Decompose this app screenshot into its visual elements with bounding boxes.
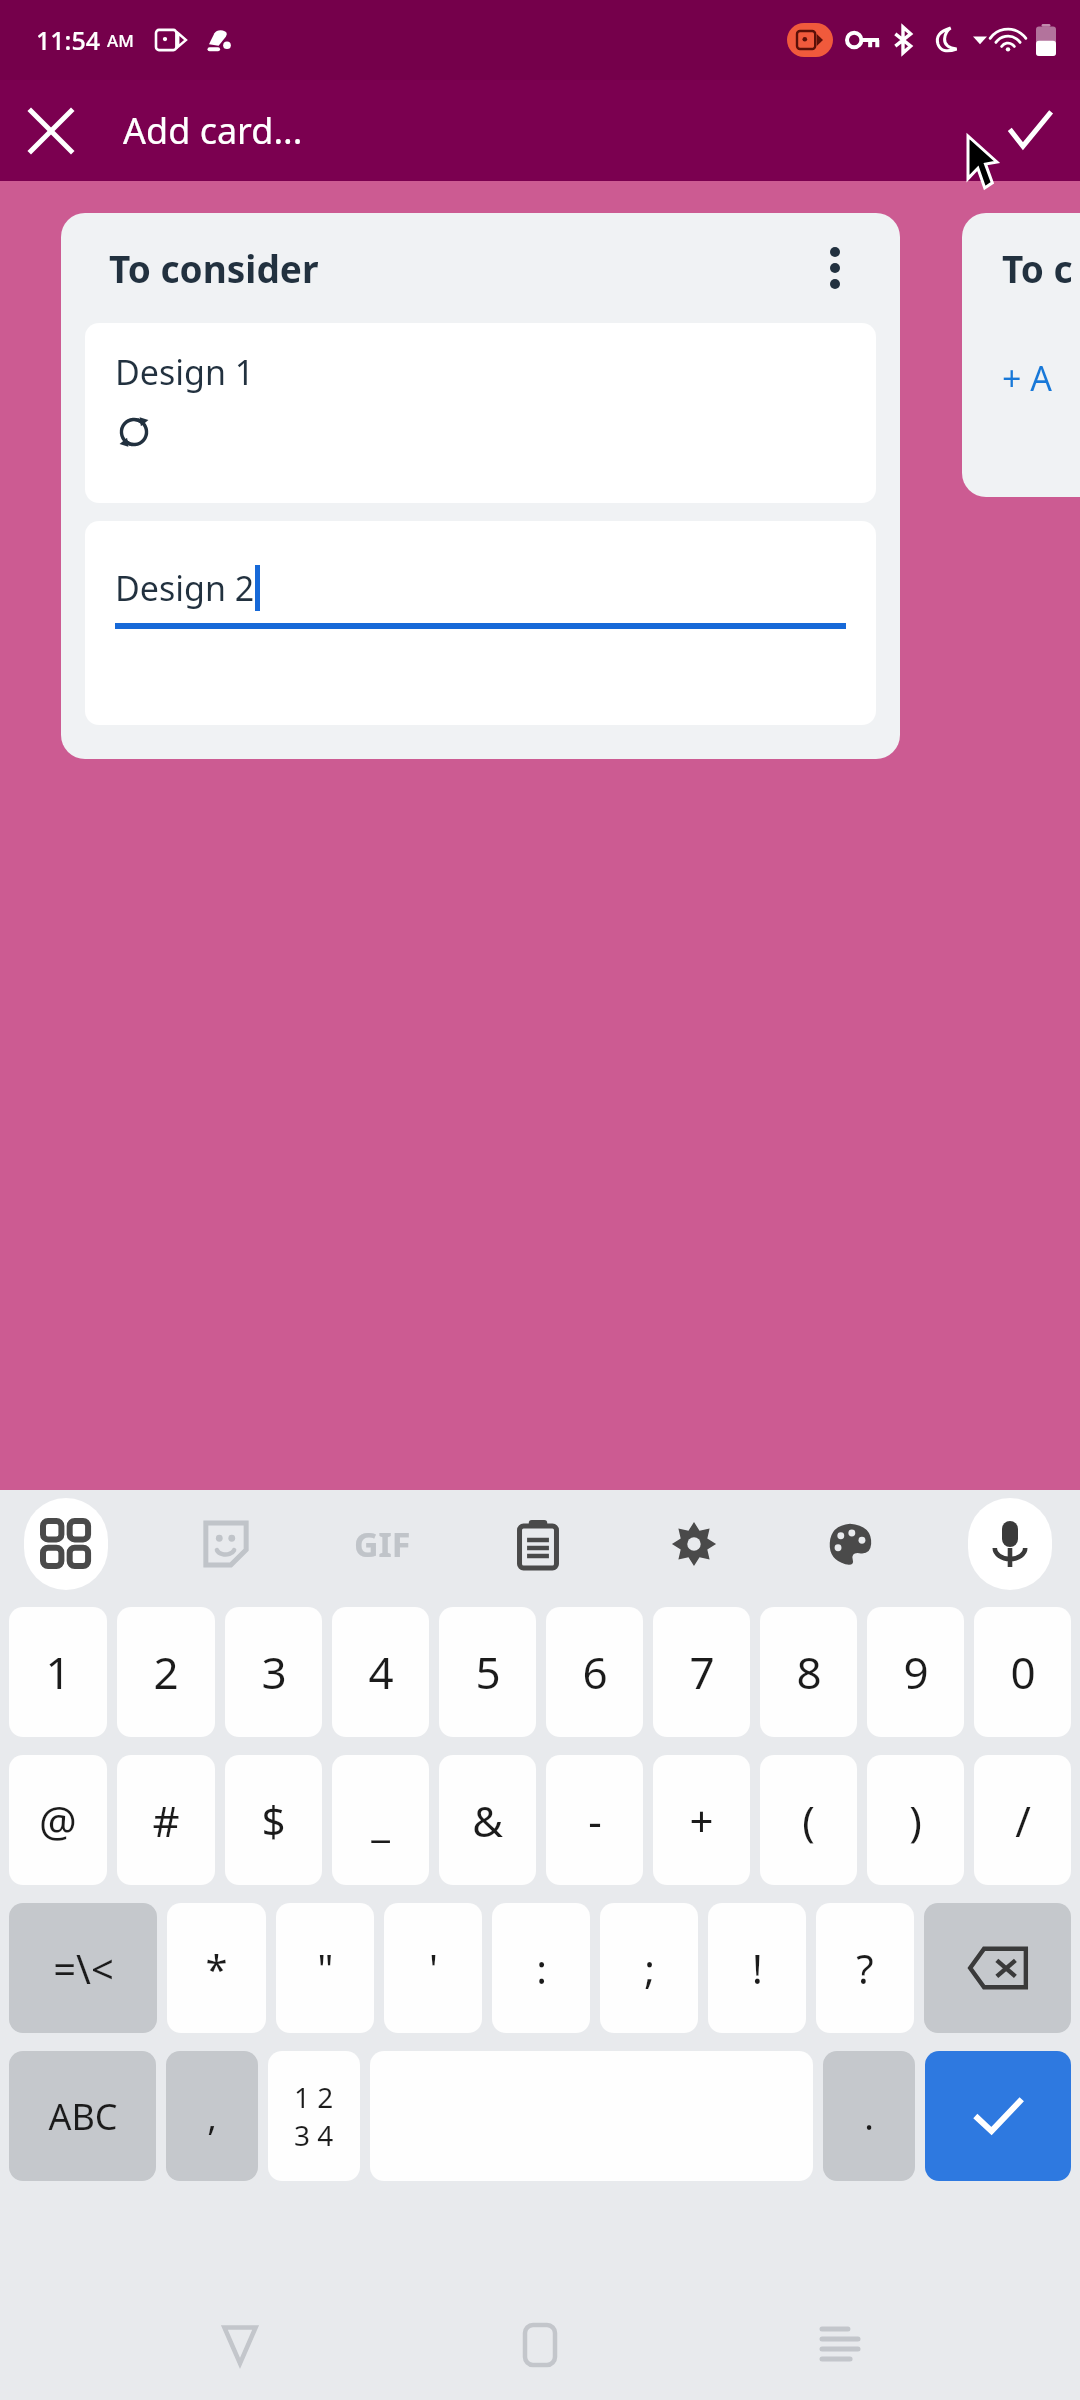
staticText: ,	[207, 2092, 217, 2141]
button[interactable]: @	[9, 1755, 107, 1885]
button[interactable]: /	[974, 1755, 1071, 1885]
button[interactable]: 9	[867, 1607, 964, 1737]
button[interactable]: 0	[974, 1607, 1071, 1737]
button[interactable]: *	[167, 1903, 266, 2033]
staticText: _	[371, 1792, 390, 1849]
staticText: 2	[153, 1642, 179, 1702]
button[interactable]: Theme	[808, 1498, 892, 1590]
staticText: 11:54	[36, 23, 101, 57]
button[interactable]: More options	[800, 233, 870, 303]
staticText: $	[261, 1792, 286, 1849]
button[interactable]: Close	[0, 80, 101, 181]
staticText: 4	[368, 1642, 394, 1702]
button[interactable]: 7	[653, 1607, 750, 1737]
button[interactable]: #	[117, 1755, 215, 1885]
button[interactable]: :	[492, 1903, 590, 2033]
button[interactable]: Design 2	[85, 521, 876, 725]
staticText: 3 4	[294, 2116, 334, 2154]
staticText: *	[205, 1941, 228, 1995]
staticText: @	[39, 1792, 77, 1849]
staticText: To c	[1002, 243, 1073, 293]
button[interactable]: Back	[180, 2290, 300, 2400]
staticText: :	[536, 1941, 547, 1995]
staticText: (	[802, 1792, 815, 1849]
button[interactable]: ?	[816, 1903, 914, 2033]
button[interactable]: 1	[9, 1607, 107, 1737]
button[interactable]: To c	[962, 213, 1080, 497]
staticText: +	[689, 1792, 714, 1849]
staticText: =\<	[53, 1941, 114, 1995]
button[interactable]: )	[867, 1755, 964, 1885]
staticText: '	[429, 1941, 438, 1995]
staticText: 5	[475, 1642, 501, 1702]
button[interactable]: Enter	[925, 2051, 1071, 2181]
staticText: /	[1015, 1792, 1031, 1849]
staticText: 7	[689, 1642, 715, 1702]
button[interactable]: &	[439, 1755, 536, 1885]
button[interactable]: $	[225, 1755, 322, 1885]
staticText: Design 2	[115, 565, 255, 611]
button[interactable]: .	[823, 2051, 915, 2181]
button[interactable]: GIF	[340, 1498, 424, 1590]
button[interactable]: +	[653, 1755, 750, 1885]
button[interactable]: ;	[600, 1903, 698, 2033]
button[interactable]: Home	[480, 2290, 600, 2400]
button[interactable]: 8	[760, 1607, 857, 1737]
staticText: Design 1	[115, 349, 255, 395]
button[interactable]: 6	[546, 1607, 643, 1737]
button[interactable]: !	[708, 1903, 806, 2033]
staticText: )	[909, 1792, 922, 1849]
staticText: GIF	[354, 1521, 411, 1567]
staticText: !	[752, 1941, 763, 1995]
button[interactable]: Design 1	[85, 323, 876, 503]
staticText: 3	[261, 1642, 287, 1702]
button[interactable]: -	[546, 1755, 643, 1885]
other: Enter	[925, 2051, 1071, 2181]
staticText: .	[864, 2092, 874, 2141]
button[interactable]: 1 2	[268, 2051, 360, 2181]
button[interactable]: =\<	[9, 1903, 157, 2033]
staticText: #	[152, 1792, 180, 1849]
staticText: 1 2	[294, 2078, 334, 2116]
staticText: 8	[796, 1642, 822, 1702]
staticText: ?	[856, 1941, 874, 1995]
staticText: 1	[45, 1642, 71, 1702]
button[interactable]: Voice input	[968, 1498, 1052, 1590]
button[interactable]: Save	[979, 80, 1080, 181]
staticText: 6	[582, 1642, 608, 1702]
staticText: ABC	[48, 2092, 118, 2141]
staticText: AM	[107, 29, 134, 52]
button[interactable]: 4	[332, 1607, 429, 1737]
staticText: &	[472, 1792, 503, 1849]
button[interactable]: Recents	[780, 2290, 900, 2400]
button[interactable]: 3	[225, 1607, 322, 1737]
staticText: Add card...	[123, 106, 303, 155]
button[interactable]: 2	[117, 1607, 215, 1737]
other: Backspace	[924, 1903, 1071, 2033]
staticText: "	[317, 1941, 334, 1995]
staticText: ;	[644, 1941, 655, 1995]
button[interactable]: Settings	[652, 1498, 736, 1590]
staticText: + A	[1002, 355, 1053, 401]
button[interactable]: 5	[439, 1607, 536, 1737]
button[interactable]: ,	[166, 2051, 258, 2181]
button[interactable]: Stickers	[184, 1498, 268, 1590]
button[interactable]: ABC	[9, 2051, 156, 2181]
staticText: -	[588, 1792, 602, 1849]
staticText: 0	[1010, 1642, 1036, 1702]
button[interactable]: Clipboard	[496, 1498, 580, 1590]
staticText: To consider	[109, 243, 319, 293]
staticText: 9	[903, 1642, 929, 1702]
button[interactable]: Toolbar	[24, 1498, 108, 1590]
button[interactable]: '	[384, 1903, 482, 2033]
button[interactable]: _	[332, 1755, 429, 1885]
button[interactable]: "	[276, 1903, 374, 2033]
button[interactable]: (	[760, 1755, 857, 1885]
button[interactable]: Backspace	[924, 1903, 1071, 2033]
